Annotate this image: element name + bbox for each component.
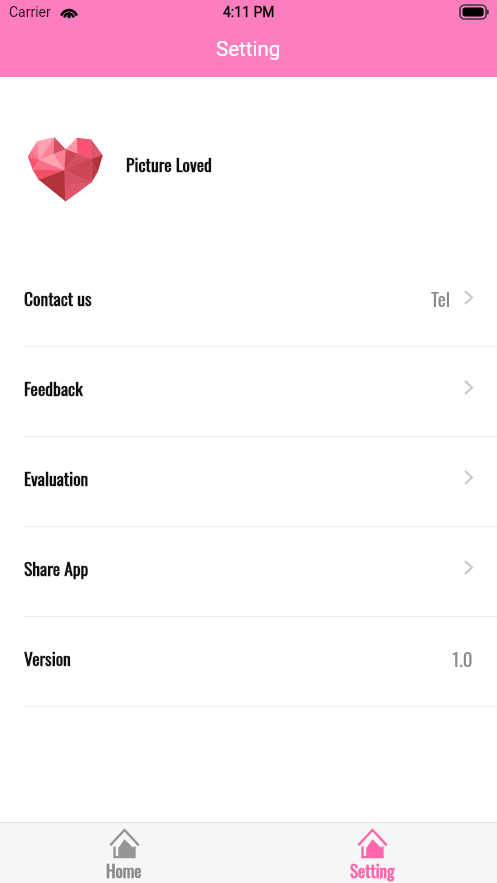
button[interactable]: Setting xyxy=(248,823,497,883)
staticText: Home xyxy=(106,858,142,883)
button[interactable]: Home xyxy=(0,823,248,883)
staticText: 4:11 PM xyxy=(223,4,275,20)
staticText: Picture Loved xyxy=(126,151,212,177)
staticText: Contact us xyxy=(24,285,92,311)
staticText: 1.0 xyxy=(452,644,473,672)
button[interactable]: Evaluation xyxy=(0,437,497,527)
button[interactable]: Feedback xyxy=(0,347,497,437)
staticText: Tel xyxy=(431,284,451,312)
staticText: Evaluation xyxy=(24,465,89,491)
button[interactable]: Share App xyxy=(0,527,497,617)
staticText: Feedback xyxy=(24,375,83,401)
staticText: Carrier xyxy=(9,4,51,20)
staticText: Version xyxy=(24,645,71,671)
button[interactable]: Contact us xyxy=(0,257,497,347)
staticText: Share App xyxy=(24,555,89,581)
staticText: Setting xyxy=(216,37,281,61)
staticText: Setting xyxy=(350,858,395,883)
button[interactable]: Version xyxy=(0,617,497,707)
